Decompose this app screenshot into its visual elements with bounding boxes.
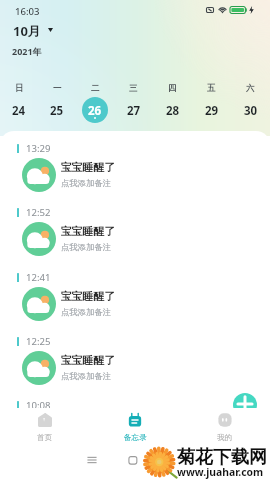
button[interactable]: 首页	[0, 408, 90, 448]
staticText: 四	[168, 83, 177, 94]
button[interactable]: 12:25	[0, 337, 270, 397]
button[interactable]: 12:41	[0, 273, 270, 333]
button[interactable]: 六	[231, 81, 270, 123]
button[interactable]: 备忘录	[90, 408, 180, 448]
staticText: 29	[205, 103, 219, 119]
staticText: 首页	[37, 433, 53, 443]
staticText: 我的	[217, 433, 233, 443]
staticText: 13:29	[26, 142, 51, 155]
staticText: 日	[15, 83, 24, 94]
staticText: www.juahar.com	[177, 465, 264, 479]
button[interactable]: Home	[127, 454, 139, 466]
staticText: 三	[129, 83, 138, 94]
button[interactable]: Add	[233, 393, 257, 417]
staticText: 25	[50, 103, 64, 119]
staticText: 备忘录	[124, 433, 147, 443]
staticText: 12:52	[26, 206, 51, 219]
staticText: 宝宝睡醒了	[61, 354, 115, 368]
staticText: 27	[127, 103, 141, 119]
button[interactable]: 13:29	[0, 144, 270, 204]
staticText: 10:08	[26, 399, 51, 412]
staticText: 五	[207, 83, 216, 94]
staticText: 宝宝睡醒了	[61, 290, 115, 304]
button[interactable]: 三	[114, 81, 153, 123]
button[interactable]: 五	[192, 81, 231, 123]
button[interactable]: Recents	[86, 454, 98, 466]
staticText: 10月	[13, 22, 41, 40]
staticText: 30	[244, 103, 258, 119]
staticText: 六	[246, 83, 255, 94]
staticText: 28	[166, 103, 180, 119]
staticText: 点我添加备注	[61, 242, 111, 252]
staticText: 二	[91, 83, 100, 94]
staticText: 12:41	[26, 271, 51, 284]
staticText: 菊花下载网	[177, 446, 267, 469]
staticText: 16:03	[15, 5, 40, 18]
button[interactable]: 二	[76, 81, 114, 123]
staticText: 12:25	[26, 335, 51, 348]
button[interactable]: 10:08	[0, 401, 270, 461]
staticText: 点我添加备注	[61, 371, 111, 381]
button[interactable]: 我的	[180, 408, 270, 448]
staticText: 宝宝睡醒了	[61, 161, 115, 175]
staticText: 点我添加备注	[61, 178, 111, 188]
staticText: 宝宝睡醒了	[61, 225, 115, 239]
button[interactable]: 四	[153, 81, 192, 123]
staticText: 点我添加备注	[61, 307, 111, 317]
staticText: 2021年	[12, 45, 42, 57]
button[interactable]: 日	[0, 81, 38, 123]
staticText: 26	[88, 103, 102, 119]
button[interactable]: 12:52	[0, 208, 270, 268]
staticText: 一	[53, 83, 62, 94]
button[interactable]: 一	[38, 81, 76, 123]
staticText: 24	[12, 103, 26, 119]
